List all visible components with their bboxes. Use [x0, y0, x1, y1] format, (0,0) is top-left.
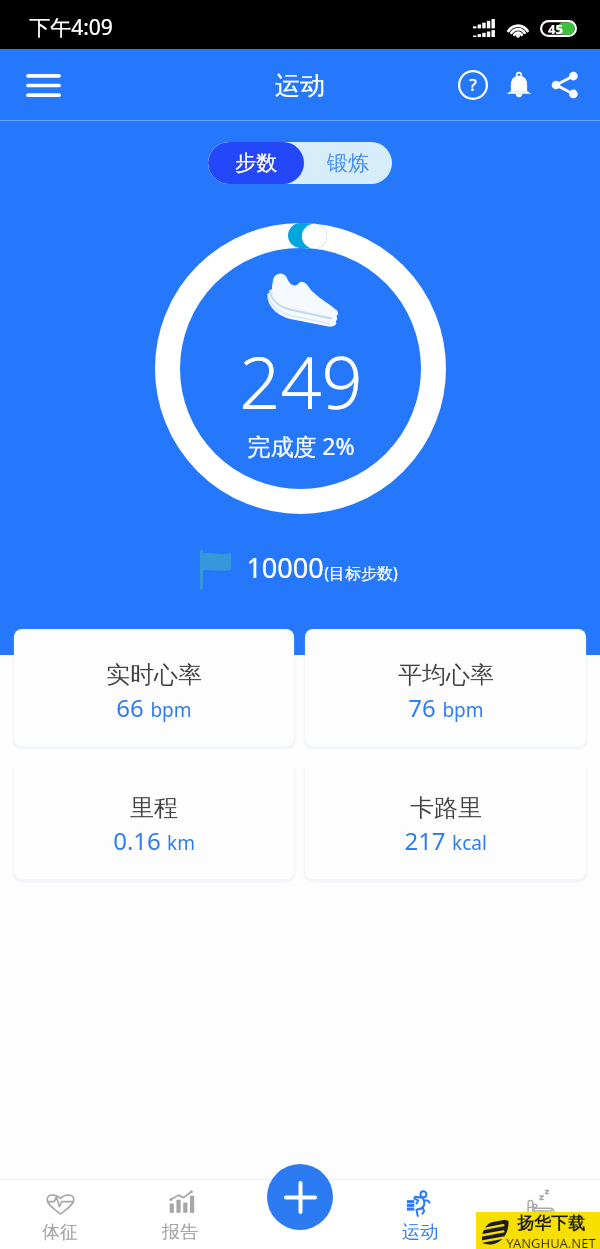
staticText: 平均心率 [398, 660, 494, 690]
staticText: 10000 [246, 549, 324, 586]
staticText: 卡路里 [410, 793, 482, 823]
staticText: YANGHUA.NET [506, 1234, 596, 1249]
staticText: 下午4:09 [29, 13, 113, 42]
button[interactable]: Help [450, 62, 496, 108]
button[interactable]: 卡路里 [305, 762, 586, 879]
staticText: 里程 [130, 793, 178, 823]
button[interactable]: 里程 [14, 762, 294, 879]
staticText: km [167, 830, 195, 856]
staticText: ? [469, 73, 477, 96]
button[interactable]: 平均心率 [305, 629, 586, 746]
staticText: (目标步数) [324, 562, 398, 584]
button[interactable]: 睡眠 [480, 1180, 600, 1249]
button[interactable]: 运动 [360, 1180, 480, 1249]
staticText: kcal [452, 830, 487, 856]
button[interactable]: 报告 [120, 1180, 240, 1249]
staticText: 报告 [162, 1221, 198, 1244]
staticText: 实时心率 [106, 660, 202, 690]
button[interactable]: Share [542, 62, 588, 108]
button[interactable]: 步数 [208, 142, 304, 184]
staticText: 体征 [42, 1221, 78, 1244]
staticText: 0.16 [113, 824, 161, 857]
staticText: 运动 [402, 1221, 438, 1244]
button[interactable]: 实时心率 [14, 629, 294, 746]
staticText: 锻炼 [327, 150, 369, 176]
button[interactable]: Add [267, 1164, 333, 1230]
staticText: 66 [116, 691, 144, 724]
staticText: 步数 [235, 150, 277, 176]
staticText: 249 [239, 332, 363, 430]
staticText: 完成度 2% [247, 430, 355, 461]
staticText: bpm [150, 697, 192, 723]
button[interactable]: 锻炼 [304, 142, 392, 184]
staticText: 217 [404, 824, 446, 857]
button[interactable]: 体征 [0, 1180, 120, 1249]
staticText: bpm [442, 697, 484, 723]
staticText: 76 [408, 691, 436, 724]
staticText: 扬华下载 [517, 1213, 585, 1234]
staticText: 运动 [275, 70, 325, 101]
button[interactable]: Menu [17, 59, 69, 111]
button[interactable]: Notifications [496, 62, 542, 108]
staticText: 睡眠 [522, 1221, 558, 1244]
staticText: 45 [548, 20, 563, 37]
